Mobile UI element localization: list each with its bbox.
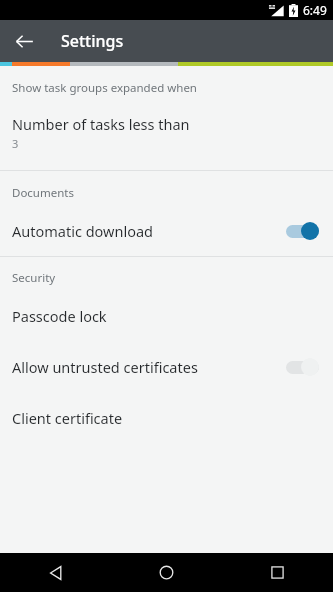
button[interactable]: Automatic download — [0, 205, 333, 256]
staticText: 6:49 — [303, 2, 327, 18]
button[interactable]: Allow untrusted certificates — [0, 341, 333, 392]
staticText: Number of tasks less than — [12, 114, 190, 134]
button[interactable]: Recent apps — [222, 553, 333, 592]
button[interactable]: Back — [8, 25, 40, 57]
button[interactable]: Passcode lock — [0, 290, 333, 341]
staticText: Allow untrusted certificates — [12, 357, 286, 377]
button[interactable]: Back — [0, 553, 111, 592]
staticText: Documents — [12, 185, 74, 201]
staticText: Passcode lock — [12, 306, 107, 326]
staticText: Automatic download — [12, 221, 286, 241]
staticText: Settings — [61, 30, 124, 52]
staticText: Show task groups expanded when — [12, 80, 197, 96]
button[interactable]: Client certificate — [0, 392, 333, 443]
staticText: 3 — [12, 136, 19, 151]
staticText: Security — [12, 270, 56, 286]
button[interactable]: Number of tasks less than — [0, 100, 333, 153]
button[interactable]: Home — [111, 553, 222, 592]
staticText: Client certificate — [12, 408, 123, 428]
